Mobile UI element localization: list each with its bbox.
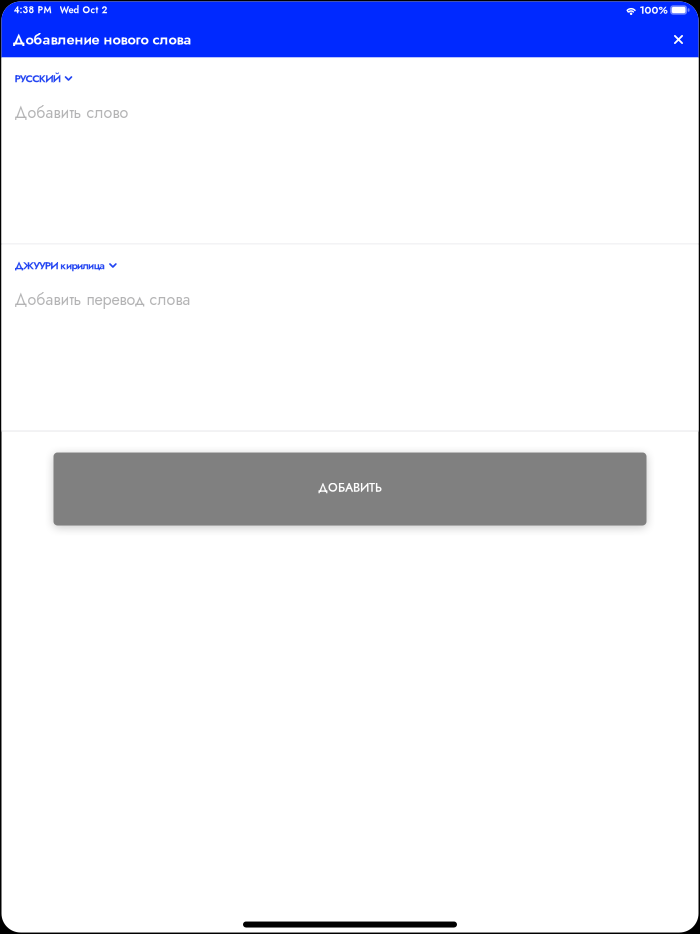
button[interactable]: РУССКИЙ xyxy=(1,57,698,95)
staticText: Добавить перевод слова xyxy=(14,288,190,311)
staticText: ДЖУУРИ кирилица xyxy=(14,258,105,273)
button[interactable]: Добавить перевод слова xyxy=(1,282,698,316)
button[interactable]: Закрыть xyxy=(661,22,695,56)
staticText: Добавить слово xyxy=(14,101,128,124)
staticText: 100% xyxy=(640,2,668,18)
button[interactable]: ДОБАВИТЬ xyxy=(53,452,646,525)
staticText: 4:38 PM xyxy=(13,3,51,17)
button[interactable]: Добавить слово xyxy=(1,95,698,129)
staticText: Добавление нового слова xyxy=(12,29,191,50)
staticText: РУССКИЙ xyxy=(14,71,61,86)
staticText: ДОБАВИТЬ xyxy=(318,479,382,496)
staticText: Wed Oct 2 xyxy=(59,3,107,17)
button[interactable]: ДЖУУРИ кирилица xyxy=(1,244,698,282)
